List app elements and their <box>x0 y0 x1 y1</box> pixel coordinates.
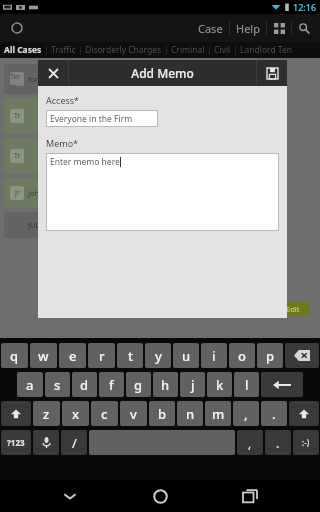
staticText: f <box>109 376 114 394</box>
button[interactable]: JULIETTE… <box>4 212 141 238</box>
staticText: , <box>248 435 252 451</box>
staticText: Tr <box>14 111 21 121</box>
button[interactable]: l <box>234 372 259 397</box>
staticText: d <box>80 376 89 394</box>
staticText: Criminal <box>171 44 205 56</box>
button[interactable]: Backspace <box>285 343 319 368</box>
staticText: l <box>245 376 249 394</box>
button[interactable]: Everyone in the Firm <box>46 110 158 127</box>
button[interactable]: Grid view <box>267 16 291 40</box>
staticText: Jr <box>15 188 20 198</box>
staticText: Case <box>198 21 223 36</box>
staticText: All Cases <box>4 44 42 56</box>
button[interactable]: Period <box>265 430 291 455</box>
button[interactable]: Save <box>257 60 287 86</box>
button[interactable]: t <box>117 343 143 368</box>
button[interactable]: e <box>59 343 86 368</box>
button[interactable]: k <box>207 372 232 397</box>
button[interactable]: All Cases <box>0 43 46 57</box>
button[interactable]: Recents <box>230 480 270 512</box>
button[interactable]: Help <box>230 17 266 40</box>
staticText: ?123 <box>7 437 25 448</box>
button[interactable]: Jr <box>4 178 141 208</box>
button[interactable]: ?123 <box>1 430 31 455</box>
button[interactable]: q <box>1 343 28 368</box>
staticText: , <box>244 405 248 423</box>
button[interactable]: Emoji <box>293 430 319 455</box>
button[interactable]: Enter <box>261 372 303 397</box>
button[interactable]: Tr <box>4 98 141 134</box>
staticText: x <box>72 405 80 423</box>
button[interactable]: Shift <box>1 401 31 426</box>
staticText: Tr <box>14 151 21 161</box>
staticText: Access* <box>46 94 80 106</box>
button[interactable]: g <box>126 372 151 397</box>
staticText: Memo* <box>46 137 79 149</box>
button[interactable]: Traffic <box>47 43 80 57</box>
staticText: r <box>99 347 105 365</box>
staticText: b <box>158 405 167 423</box>
button[interactable]: d <box>72 372 97 397</box>
button[interactable]: Disorderly Charges <box>81 43 166 57</box>
staticText: t <box>128 347 133 365</box>
button[interactable]: , <box>233 401 259 426</box>
button[interactable]: Civil <box>210 43 235 57</box>
button[interactable]: Comma <box>237 430 263 455</box>
button[interactable]: Voice input <box>33 430 59 455</box>
button[interactable]: r <box>88 343 115 368</box>
button[interactable]: Slash <box>61 430 87 455</box>
staticText: Landlord Ten <box>240 44 292 56</box>
button[interactable]: n <box>177 401 203 426</box>
button[interactable]: s <box>45 372 70 397</box>
button[interactable]: p <box>257 343 283 368</box>
staticText: Add Memo <box>131 65 194 81</box>
staticText: Disorderly Charges <box>85 44 162 56</box>
button[interactable]: Edit <box>276 302 310 316</box>
button[interactable]: c <box>91 401 118 426</box>
button[interactable]: Home <box>140 480 180 512</box>
button[interactable]: v <box>120 401 147 426</box>
button[interactable]: u <box>173 343 199 368</box>
button[interactable]: m <box>205 401 231 426</box>
button[interactable]: z <box>33 401 60 426</box>
button[interactable]: w <box>30 343 57 368</box>
button[interactable]: Search <box>292 16 316 40</box>
staticText: u <box>182 347 191 365</box>
button[interactable]: Landlord Ten <box>236 43 296 57</box>
button[interactable]: y <box>145 343 171 368</box>
button[interactable]: b <box>149 401 175 426</box>
staticText: k <box>216 376 224 394</box>
button[interactable]: Close <box>38 60 68 86</box>
button[interactable]: App logo <box>6 17 28 39</box>
button[interactable]: f <box>99 372 124 397</box>
staticText: Term… <box>10 72 24 86</box>
button[interactable]: h <box>153 372 178 397</box>
button[interactable]: . <box>261 401 287 426</box>
staticText: Everyone in the Firm <box>50 113 133 125</box>
staticText: n <box>186 405 195 423</box>
staticText: j <box>191 376 195 394</box>
button[interactable]: Shift <box>289 401 319 426</box>
staticText: Edit <box>286 304 300 314</box>
staticText: / <box>72 434 77 452</box>
staticText: Traffic <box>51 44 76 56</box>
button[interactable]: Enter memo here <box>46 153 279 231</box>
button[interactable]: a <box>17 372 43 397</box>
staticText: JULIETTE… <box>28 220 65 230</box>
button[interactable]: Tr <box>4 138 141 174</box>
button[interactable]: Case <box>192 17 229 40</box>
staticText: h <box>161 376 170 394</box>
staticText: a <box>26 376 34 394</box>
button[interactable]: o <box>229 343 255 368</box>
button[interactable]: i <box>201 343 227 368</box>
staticText: Enter memo here <box>50 156 120 168</box>
button[interactable]: Criminal <box>167 43 209 57</box>
button[interactable]: Hide keyboard <box>50 480 90 512</box>
button[interactable]: x <box>62 401 89 426</box>
staticText: e <box>69 347 77 365</box>
button[interactable]: j <box>180 372 205 397</box>
button[interactable]: Term… <box>4 64 141 94</box>
